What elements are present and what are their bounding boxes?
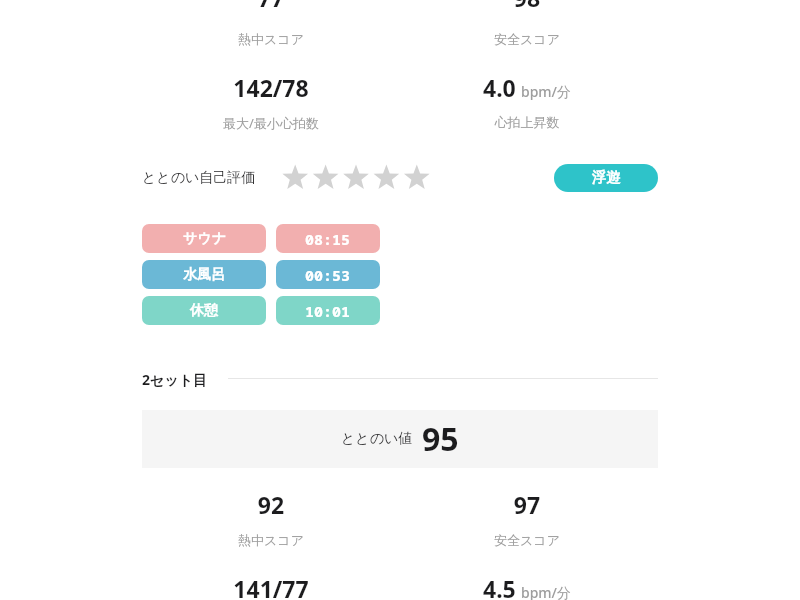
- button[interactable]: サウナ: [142, 224, 266, 253]
- staticText: 92: [151, 489, 391, 520]
- button[interactable]: 浮遊: [554, 164, 658, 192]
- staticText: ととのい値: [341, 430, 413, 448]
- staticText: サウナ: [183, 230, 226, 248]
- staticText: 97: [407, 489, 647, 520]
- staticText: 95: [422, 417, 459, 461]
- staticText: 4.5: [483, 573, 516, 600]
- staticText: 熱中スコア: [151, 31, 391, 47]
- button[interactable]: 休憩: [142, 296, 266, 325]
- button[interactable]: ととのい自己評価 5段階評価: [280, 162, 432, 194]
- staticText: 00:53: [305, 265, 351, 285]
- staticText: bpm/分: [521, 82, 572, 101]
- staticText: 安全スコア: [407, 31, 647, 47]
- staticText: bpm/分: [521, 583, 572, 600]
- staticText: 水風呂: [183, 266, 225, 284]
- staticText: 98: [407, 0, 647, 13]
- staticText: ととのい自己評価: [142, 169, 256, 187]
- staticText: 10:01: [305, 301, 351, 321]
- staticText: 08:15: [305, 229, 351, 249]
- staticText: 心拍上昇数: [407, 114, 647, 130]
- button[interactable]: 水風呂: [142, 260, 266, 289]
- button[interactable]: ととのい値: [142, 410, 658, 468]
- staticText: 休憩: [190, 302, 218, 320]
- staticText: 浮遊: [592, 169, 620, 187]
- staticText: 4.0: [483, 72, 516, 103]
- staticText: 安全スコア: [407, 532, 647, 548]
- staticText: 熱中スコア: [151, 532, 391, 548]
- staticText: 141/77: [151, 573, 391, 600]
- button[interactable]: 10:01: [276, 296, 380, 325]
- button[interactable]: 00:53: [276, 260, 380, 289]
- staticText: 最大/最小心拍数: [151, 114, 391, 132]
- staticText: 142/78: [151, 72, 391, 103]
- staticText: 77: [151, 0, 391, 13]
- staticText: 2セット目: [142, 370, 207, 389]
- button[interactable]: 08:15: [276, 224, 380, 253]
